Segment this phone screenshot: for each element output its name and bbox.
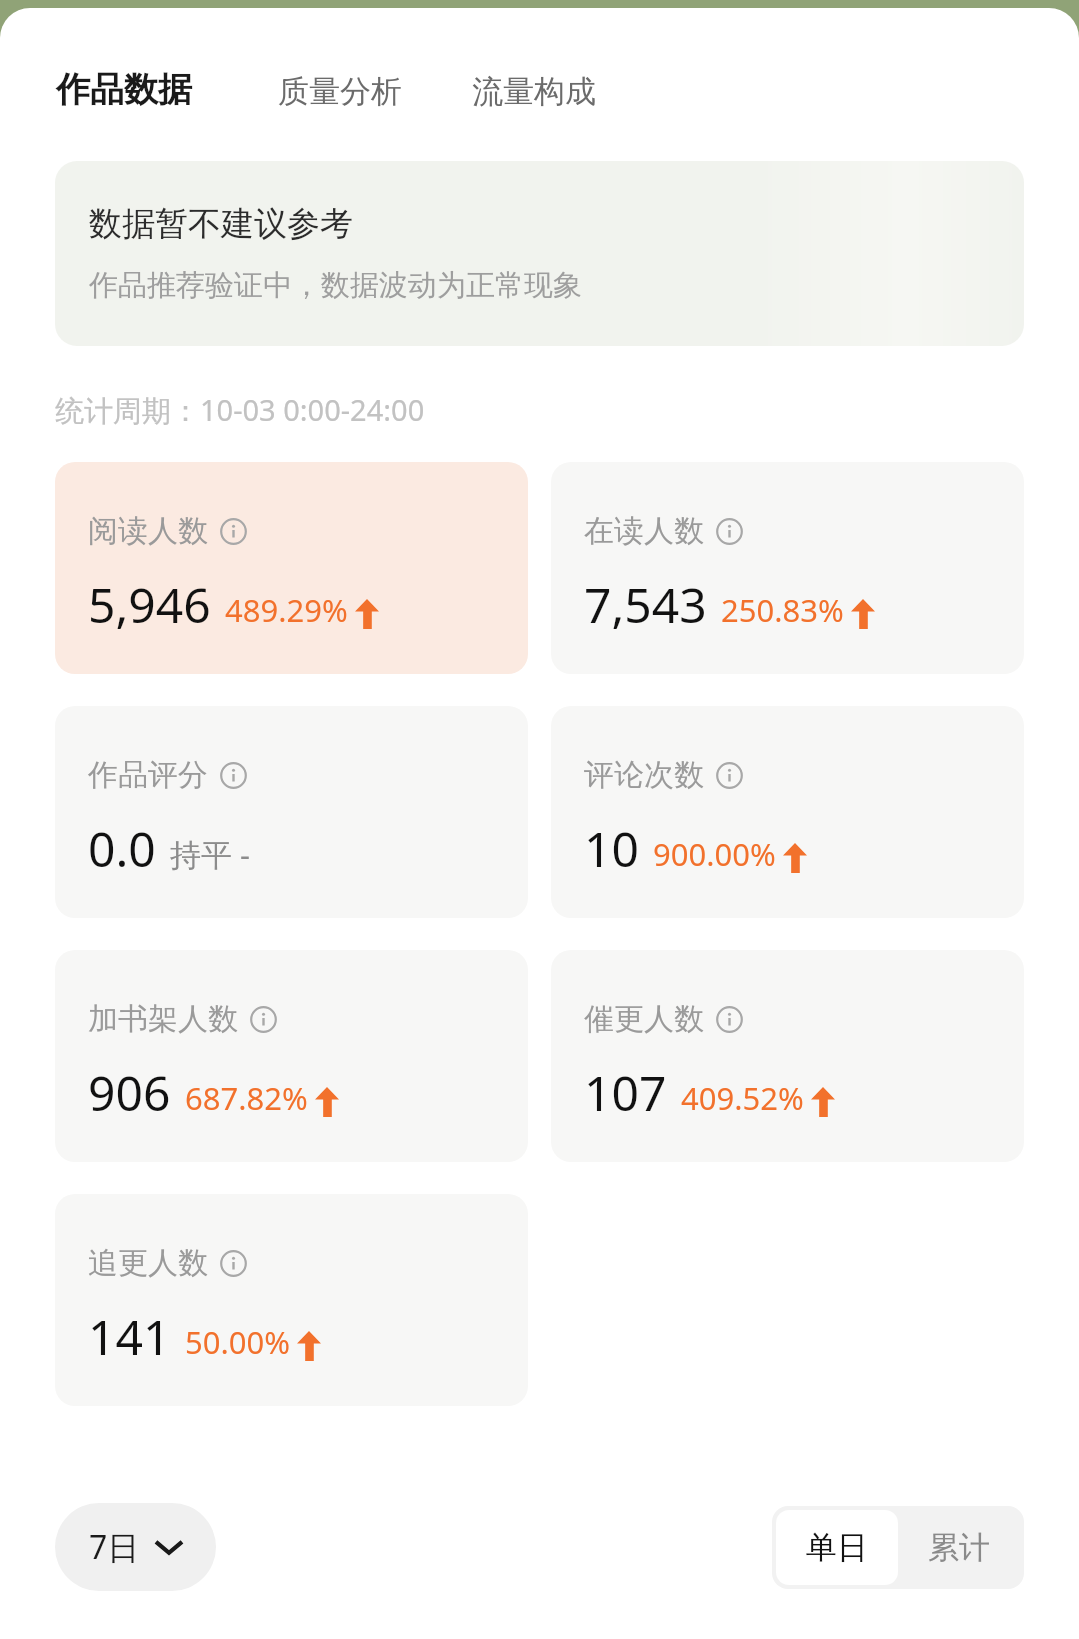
other: Info [220, 1250, 247, 1277]
button[interactable]: 质量分析 [274, 68, 406, 115]
button[interactable]: 催更人数 [551, 950, 1024, 1162]
staticText: 7日 [89, 1525, 140, 1569]
button[interactable]: 作品数据 [52, 64, 196, 115]
staticText: 持平 - [170, 833, 251, 875]
button[interactable]: 阅读人数 [55, 462, 528, 674]
staticText: 追更人数 [88, 1244, 208, 1282]
staticText: 统计周期：10-03 0:00-24:00 [55, 390, 425, 430]
other: Info [716, 1006, 743, 1033]
staticText: 107 [584, 1060, 667, 1125]
staticText: 489.29% [225, 589, 348, 631]
staticText: 50.00% [185, 1321, 290, 1363]
staticText: 141 [88, 1304, 171, 1369]
staticText: 900.00% [653, 833, 776, 875]
other: Info [716, 518, 743, 545]
staticText: 在读人数 [584, 512, 704, 550]
staticText: 阅读人数 [88, 512, 208, 550]
other: Info [250, 1006, 277, 1033]
button[interactable]: 累计 [898, 1510, 1020, 1585]
staticText: 质量分析 [278, 72, 402, 111]
staticText: 作品推荐验证中，数据波动为正常现象 [89, 267, 582, 304]
staticText: 0.0 [88, 816, 156, 881]
staticText: 单日 [806, 1528, 868, 1567]
button[interactable]: 单日 [776, 1510, 898, 1585]
staticText: 10 [584, 816, 639, 881]
button[interactable]: 7日 [55, 1503, 216, 1591]
button[interactable]: 加书架人数 [55, 950, 528, 1162]
button[interactable]: 作品评分 [55, 706, 528, 918]
staticText: 催更人数 [584, 1000, 704, 1038]
button[interactable]: 在读人数 [551, 462, 1024, 674]
staticText: 作品数据 [56, 68, 192, 111]
staticText: 作品评分 [88, 756, 208, 794]
staticText: 评论次数 [584, 756, 704, 794]
staticText: 7,543 [584, 572, 707, 637]
staticText: 687.82% [185, 1077, 308, 1119]
staticText: 累计 [928, 1528, 990, 1567]
button[interactable]: 评论次数 [551, 706, 1024, 918]
staticText: 906 [88, 1060, 171, 1125]
other: Info [220, 518, 247, 545]
staticText: 409.52% [681, 1077, 804, 1119]
other: Info [220, 762, 247, 789]
staticText: 加书架人数 [88, 1000, 238, 1038]
other: Info [716, 762, 743, 789]
staticText: 流量构成 [472, 72, 596, 111]
button[interactable]: 数据暂不建议参考 [55, 161, 1024, 346]
staticText: 5,946 [88, 572, 211, 637]
button[interactable]: 追更人数 [55, 1194, 528, 1406]
staticText: 数据暂不建议参考 [89, 203, 353, 245]
staticText: 250.83% [721, 589, 844, 631]
button[interactable]: 流量构成 [468, 68, 600, 115]
